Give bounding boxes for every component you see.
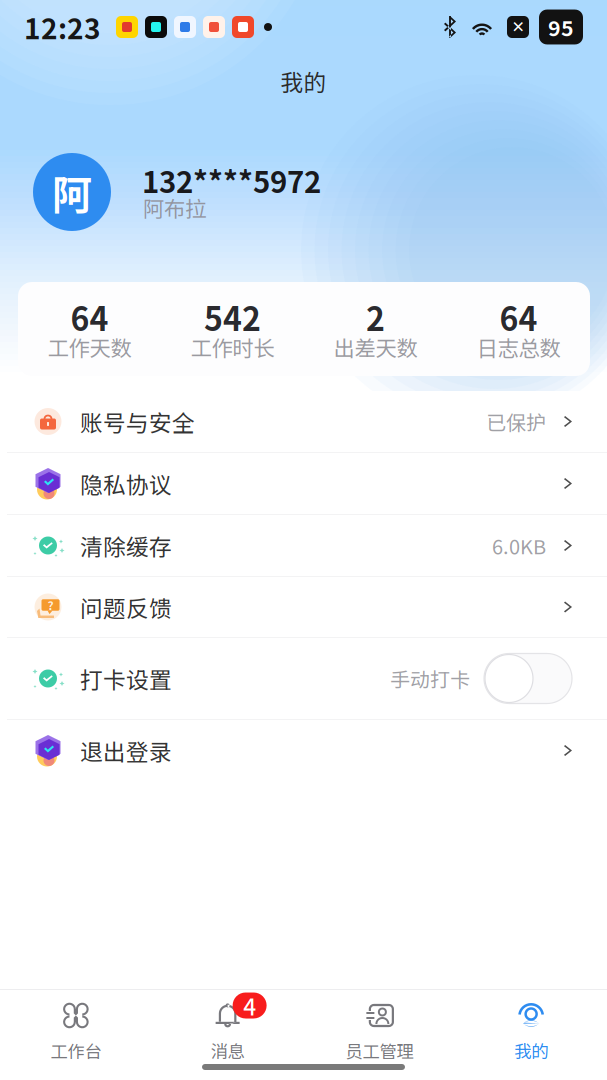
staticText: 打卡设置 bbox=[80, 662, 172, 695]
button[interactable]: 隐私协议 bbox=[0, 453, 607, 514]
staticText: 阿布拉 bbox=[143, 192, 206, 223]
staticText: 日志总数 bbox=[476, 332, 560, 362]
staticText: 6.0KB bbox=[492, 531, 546, 560]
button[interactable]: ? bbox=[0, 577, 607, 637]
button[interactable]: 退出登录 bbox=[0, 720, 607, 781]
staticText: 95 bbox=[548, 12, 574, 42]
staticText: 手动打卡 bbox=[390, 664, 470, 693]
button[interactable]: 打卡设置 bbox=[0, 638, 607, 719]
staticText: 工作天数 bbox=[47, 332, 131, 362]
staticText: 消息 bbox=[211, 1038, 245, 1063]
staticText: 工作时长 bbox=[190, 332, 274, 362]
button[interactable]: 4 bbox=[152, 990, 304, 1066]
staticText: 工作台 bbox=[50, 1038, 101, 1063]
staticText: 2 bbox=[366, 294, 385, 340]
staticText: 4 bbox=[243, 989, 256, 1022]
staticText: ? bbox=[47, 596, 53, 614]
staticText: 阿 bbox=[52, 163, 92, 221]
staticText: 64 bbox=[70, 294, 108, 340]
staticText: 我的 bbox=[514, 1038, 548, 1063]
staticText: 问题反馈 bbox=[80, 591, 172, 623]
staticText: 出差天数 bbox=[333, 332, 417, 362]
staticText: 132****5972 bbox=[142, 159, 321, 201]
staticText: 我的 bbox=[280, 65, 326, 97]
staticText: 员工管理 bbox=[345, 1038, 413, 1063]
staticText: 账号与安全 bbox=[80, 405, 195, 438]
staticText: 清除缓存 bbox=[80, 529, 172, 562]
button[interactable]: 账号与安全 bbox=[0, 391, 607, 452]
staticText: 12:23 bbox=[24, 7, 101, 47]
button[interactable]: 清除缓存 bbox=[0, 515, 607, 576]
button[interactable]: 我的 bbox=[455, 990, 607, 1066]
staticText: 已保护 bbox=[486, 407, 546, 436]
staticText: ✕ bbox=[511, 18, 524, 36]
staticText: 退出登录 bbox=[80, 734, 172, 767]
button[interactable]: 工作台 bbox=[0, 990, 152, 1066]
staticText: 64 bbox=[499, 294, 537, 340]
staticText: 542 bbox=[204, 294, 261, 340]
button[interactable]: 员工管理 bbox=[303, 990, 455, 1066]
staticText: 隐私协议 bbox=[80, 467, 172, 500]
